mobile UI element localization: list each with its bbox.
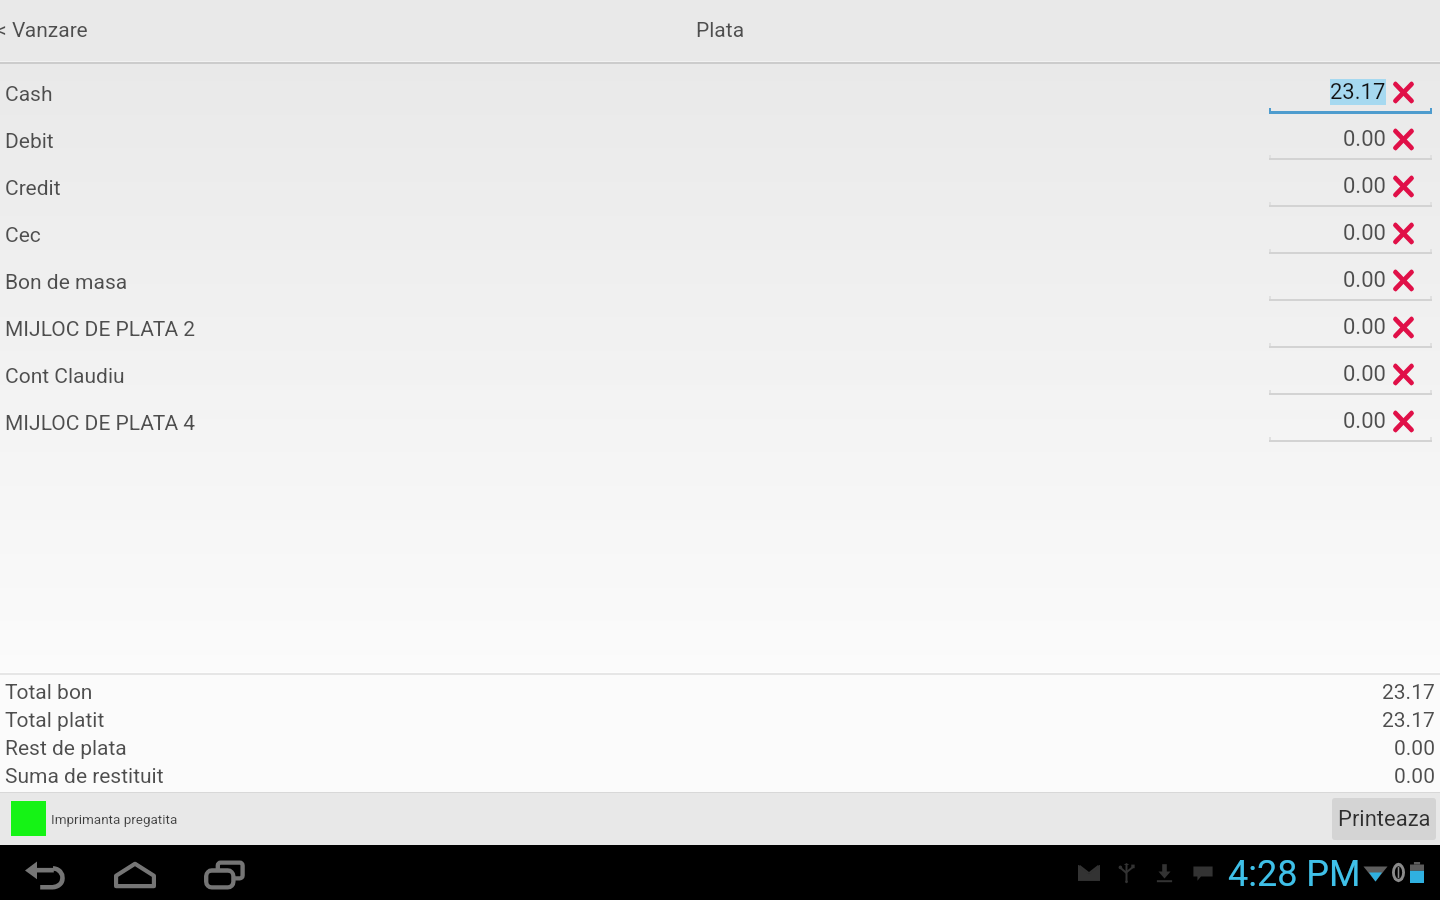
button[interactable]: Suma Cont Claudiu — [1269, 352, 1432, 399]
button[interactable]: Home — [102, 847, 168, 900]
staticText: 0.00 — [1343, 267, 1386, 293]
staticText: 4:28 PM — [1228, 853, 1361, 895]
staticText: MIJLOC DE PLATA 4 — [5, 411, 196, 436]
staticText: 0.00 — [1343, 361, 1386, 387]
staticText: Suma de restituit — [5, 764, 164, 789]
button[interactable]: Sterge — [1383, 73, 1423, 111]
button[interactable]: Sterge — [1383, 402, 1423, 440]
button[interactable]: Recents — [192, 847, 258, 900]
button[interactable]: Printeaza — [1332, 798, 1436, 840]
button[interactable]: Sterge — [1383, 214, 1423, 252]
button[interactable]: Suma Cec — [1269, 211, 1432, 258]
button[interactable]: Sterge — [1383, 355, 1423, 393]
button[interactable]: Cec — [0, 211, 1440, 258]
staticText: Total bon — [5, 680, 93, 705]
button[interactable]: Sterge — [1383, 261, 1423, 299]
staticText: Cec — [5, 223, 41, 248]
staticText: 0.00 — [1394, 764, 1435, 789]
button[interactable]: Sterge — [1383, 120, 1423, 158]
button[interactable]: Credit — [0, 164, 1440, 211]
button[interactable]: Suma Cash — [1269, 70, 1432, 117]
button[interactable]: Suma MIJLOC DE PLATA 2 — [1269, 305, 1432, 352]
staticText: 0.00 — [1343, 314, 1386, 340]
button[interactable]: Suma Bon de masa — [1269, 258, 1432, 305]
staticText: 23.17 — [1330, 79, 1386, 105]
staticText: MIJLOC DE PLATA 2 — [5, 317, 196, 342]
staticText: 23.17 — [1382, 680, 1435, 705]
button[interactable]: < Vanzare — [0, 0, 102, 61]
staticText: 23.17 — [1382, 708, 1435, 733]
staticText: Total platit — [5, 708, 105, 733]
button[interactable]: Cash — [0, 70, 1440, 117]
staticText: Imprimanta pregatita — [51, 811, 178, 827]
staticText: 0.00 — [1343, 408, 1386, 434]
button[interactable]: Bon de masa — [0, 258, 1440, 305]
staticText: 0.00 — [1343, 173, 1386, 199]
button[interactable]: Debit — [0, 117, 1440, 164]
staticText: Credit — [5, 176, 61, 201]
staticText: 0.00 — [1343, 126, 1386, 152]
button[interactable]: Suma MIJLOC DE PLATA 4 — [1269, 399, 1432, 446]
button[interactable]: Suma Credit — [1269, 164, 1432, 211]
button[interactable]: Suma Debit — [1269, 117, 1432, 164]
staticText: Bon de masa — [5, 270, 128, 295]
staticText: Printeaza — [1338, 806, 1431, 832]
staticText: < Vanzare — [0, 18, 88, 43]
staticText: Plata — [696, 18, 745, 43]
button[interactable]: MIJLOC DE PLATA 4 — [0, 399, 1440, 446]
staticText: Rest de plata — [5, 736, 127, 761]
button[interactable]: MIJLOC DE PLATA 2 — [0, 305, 1440, 352]
button[interactable]: Sterge — [1383, 308, 1423, 346]
staticText: Cont Claudiu — [5, 364, 125, 389]
staticText: Cash — [5, 82, 53, 107]
staticText: Debit — [5, 129, 54, 154]
button[interactable]: Sterge — [1383, 167, 1423, 205]
staticText: 0.00 — [1394, 736, 1435, 761]
button[interactable]: Cont Claudiu — [0, 352, 1440, 399]
staticText: 0.00 — [1343, 220, 1386, 246]
button[interactable]: Back — [12, 847, 78, 900]
